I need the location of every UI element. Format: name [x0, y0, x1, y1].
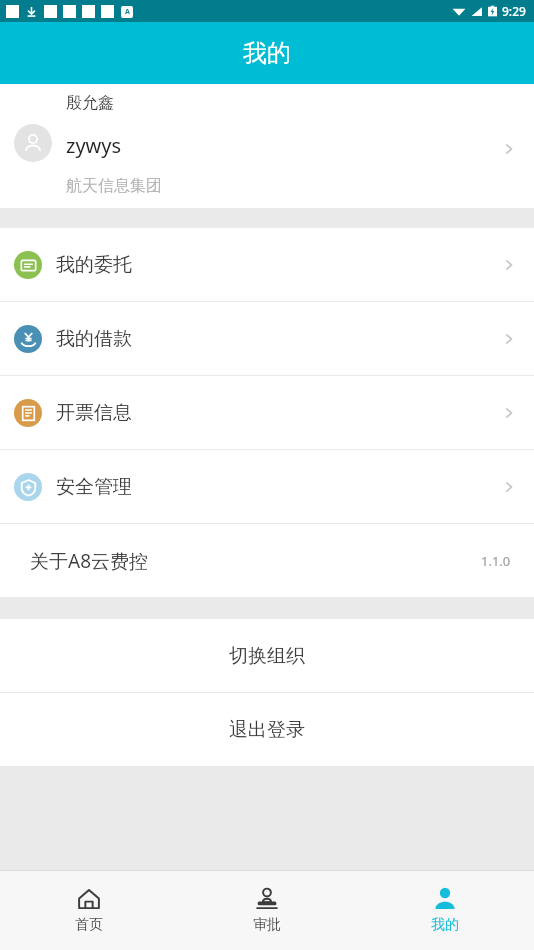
- staticText: 切换组织: [229, 644, 305, 668]
- button[interactable]: 首页: [0, 870, 178, 950]
- button[interactable]: 安全管理: [0, 450, 534, 523]
- button[interactable]: 殷允鑫: [0, 84, 534, 208]
- staticText: 我的委托: [56, 253, 132, 277]
- staticText: 我的: [431, 916, 459, 934]
- staticText: 1.1.0: [481, 552, 511, 570]
- staticText: 我的: [243, 38, 291, 68]
- button[interactable]: 关于A8云费控: [0, 524, 534, 597]
- staticText: 退出登录: [229, 718, 305, 742]
- button[interactable]: 开票信息: [0, 376, 534, 449]
- staticText: 关于A8云费控: [30, 548, 149, 574]
- staticText: 殷允鑫: [66, 93, 114, 113]
- button[interactable]: 审批: [178, 870, 356, 950]
- staticText: 安全管理: [56, 475, 132, 499]
- staticText: A: [125, 7, 130, 17]
- staticText: 我的借款: [56, 327, 132, 351]
- staticText: 航天信息集团: [66, 176, 162, 196]
- staticText: 9:29: [502, 3, 526, 19]
- staticText: 首页: [75, 916, 103, 934]
- button[interactable]: 我的借款: [0, 302, 534, 375]
- button[interactable]: 切换组织: [0, 619, 534, 692]
- staticText: zywys: [66, 132, 122, 159]
- staticText: 开票信息: [56, 401, 132, 425]
- staticText: 审批: [253, 916, 281, 934]
- button[interactable]: 我的: [356, 870, 534, 950]
- button[interactable]: 退出登录: [0, 693, 534, 766]
- button[interactable]: 我的委托: [0, 228, 534, 301]
